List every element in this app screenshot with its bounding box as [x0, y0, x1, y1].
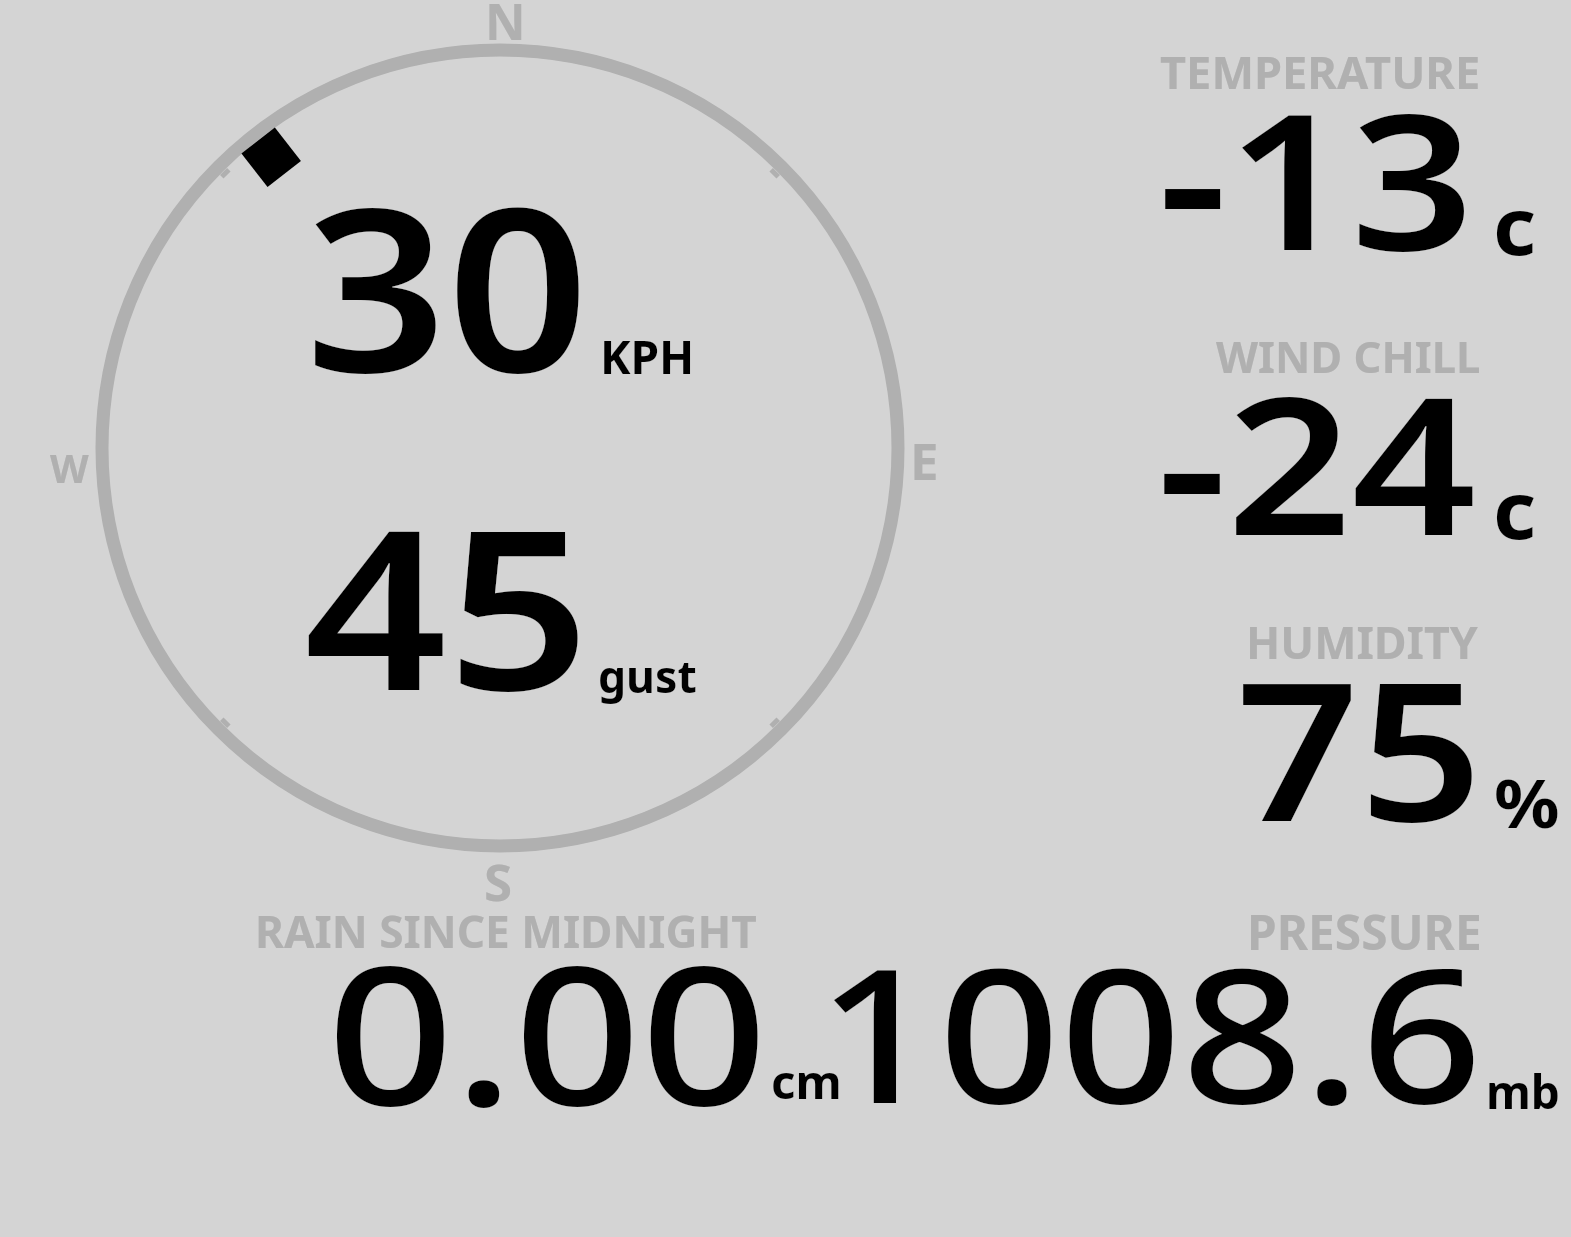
staticText: S [484, 846, 513, 915]
button[interactable]: Pressure [880, 890, 1570, 1130]
staticText: % [1494, 758, 1561, 847]
staticText: 45 [304, 454, 590, 755]
staticText: HUMIDITY [1246, 611, 1478, 672]
staticText: 1008.6 [817, 905, 1483, 1157]
button[interactable]: Wind chill [1000, 310, 1560, 560]
staticText: -13 [1158, 48, 1474, 305]
button[interactable]: Rain since midnight [230, 890, 870, 1130]
staticText: 75 [1236, 617, 1483, 877]
staticText: gust [598, 645, 697, 706]
staticText: WIND CHILL [1216, 326, 1481, 385]
staticText: c [1493, 172, 1537, 278]
staticText: W [50, 440, 89, 494]
staticText: KPH [600, 325, 695, 388]
staticText: 30 [305, 129, 589, 438]
button[interactable]: Wind direction compass [20, 0, 980, 900]
staticText: mb [1486, 1060, 1560, 1123]
staticText: cm [771, 1050, 842, 1113]
button[interactable]: Humidity [1000, 600, 1560, 850]
staticText: c [1493, 456, 1537, 562]
staticText: PRESSURE [1247, 899, 1482, 964]
staticText: N [485, 0, 526, 55]
staticText: TEMPERATURE [1160, 41, 1481, 103]
staticText: RAIN SINCE MIDNIGHT [255, 901, 757, 961]
staticText: 0.00 [327, 901, 768, 1161]
staticText: -24 [1157, 332, 1477, 591]
staticText: E [910, 425, 939, 494]
button[interactable]: Temperature [1000, 30, 1560, 280]
